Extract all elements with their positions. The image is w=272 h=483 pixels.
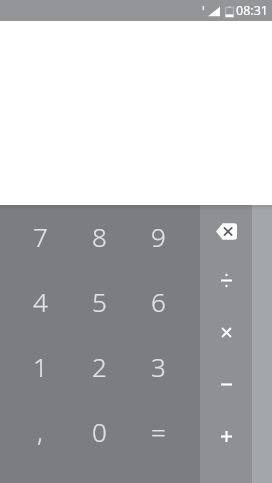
button[interactable]: 0 [66, 399, 133, 464]
other: Minus [221, 379, 232, 390]
button[interactable]: Divide [200, 255, 252, 306]
button[interactable]: Minus [200, 358, 252, 410]
button[interactable]: 2 [66, 334, 133, 399]
staticText: 4 [33, 284, 48, 319]
staticText: = [151, 414, 166, 449]
staticText: 7 [33, 219, 48, 254]
staticText: 9 [151, 219, 166, 254]
staticText: , [37, 414, 43, 449]
button[interactable]: 1 [0, 334, 66, 399]
other: Plus [221, 431, 232, 442]
other: Multiply [222, 328, 231, 337]
other: Backspace [216, 223, 237, 240]
staticText: 1 [33, 349, 48, 384]
button[interactable]: 7 [0, 204, 66, 269]
button[interactable]: Plus [200, 410, 252, 462]
staticText: 2 [92, 349, 107, 384]
button[interactable]: , [0, 399, 66, 464]
button[interactable]: 6 [133, 269, 200, 334]
other: Divide [221, 275, 232, 286]
button[interactable]: = [133, 399, 200, 464]
staticText: 6 [151, 284, 166, 319]
button[interactable]: 5 [66, 269, 133, 334]
staticText: 5 [92, 284, 107, 319]
button[interactable]: 9 [133, 204, 200, 269]
staticText: 8 [92, 219, 107, 254]
staticText: 08:31 [236, 2, 268, 19]
button[interactable]: 3 [133, 334, 200, 399]
button[interactable]: 8 [66, 204, 133, 269]
staticText: 0 [92, 414, 107, 449]
button[interactable]: Multiply [200, 306, 252, 358]
button[interactable]: 4 [0, 269, 66, 334]
staticText: 3 [151, 349, 166, 384]
button[interactable]: Backspace [200, 204, 252, 255]
